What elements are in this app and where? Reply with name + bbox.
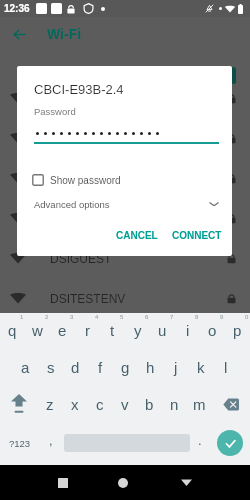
button[interactable]: GUEST-NET bbox=[0, 198, 250, 238]
staticText: e bbox=[58, 322, 67, 339]
button[interactable]: Shift bbox=[0, 389, 38, 419]
button[interactable]: ?123 bbox=[0, 428, 40, 458]
button[interactable]: Show password bbox=[32, 170, 121, 190]
button[interactable]: Recents bbox=[50, 465, 76, 500]
button[interactable]: l bbox=[213, 352, 238, 382]
button[interactable]: n bbox=[162, 389, 187, 419]
button[interactable]: 5 bbox=[100, 313, 125, 343]
staticText: w bbox=[32, 322, 43, 339]
staticText: t bbox=[110, 322, 115, 339]
staticText: DSITESTENV bbox=[50, 292, 126, 305]
button[interactable]: HOME-WIFI bbox=[0, 118, 250, 158]
staticText: b bbox=[145, 396, 154, 413]
staticText: f bbox=[98, 359, 103, 376]
staticText: 4 bbox=[95, 314, 99, 321]
staticText: Password bbox=[34, 106, 76, 117]
button[interactable]: g bbox=[113, 352, 138, 382]
staticText: 5 bbox=[120, 314, 124, 321]
staticText: Wi-Fi bbox=[47, 26, 82, 42]
button[interactable]: 2 bbox=[25, 313, 50, 343]
staticText: HOME-WIFI bbox=[50, 132, 116, 145]
button[interactable]: Home bbox=[110, 465, 136, 500]
staticText: k bbox=[197, 359, 205, 376]
button[interactable]: a bbox=[13, 352, 38, 382]
staticText: r bbox=[85, 322, 90, 339]
button[interactable]: . bbox=[189, 428, 211, 458]
button[interactable]: b bbox=[137, 389, 162, 419]
button[interactable]: 1 bbox=[0, 313, 25, 343]
staticText: v bbox=[121, 396, 129, 413]
button[interactable]: k bbox=[188, 352, 213, 382]
staticText: ?123 bbox=[9, 438, 31, 449]
button[interactable]: f bbox=[88, 352, 113, 382]
staticText: y bbox=[134, 322, 142, 339]
staticText: i bbox=[186, 322, 190, 339]
staticText: 9 bbox=[220, 314, 224, 321]
button[interactable]: 9 bbox=[200, 313, 225, 343]
staticText: x bbox=[71, 396, 79, 413]
button[interactable]: , bbox=[38, 428, 63, 458]
staticText: j bbox=[174, 359, 178, 376]
button[interactable]: Backspace bbox=[212, 389, 250, 419]
button[interactable]: h bbox=[138, 352, 163, 382]
staticText: n bbox=[170, 396, 179, 413]
staticText: u bbox=[158, 322, 167, 339]
staticText: a bbox=[21, 359, 30, 376]
staticText: 6 bbox=[145, 314, 149, 321]
staticText: h bbox=[146, 359, 155, 376]
staticText: z bbox=[46, 396, 54, 413]
staticText: NETGEAR-5G bbox=[50, 92, 129, 105]
staticText: . bbox=[198, 433, 202, 448]
button[interactable]: v bbox=[112, 389, 137, 419]
staticText: 7 bbox=[170, 314, 174, 321]
button[interactable]: j bbox=[163, 352, 188, 382]
button[interactable]: 7 bbox=[150, 313, 175, 343]
staticText: q bbox=[8, 322, 17, 339]
staticText: c bbox=[96, 396, 104, 413]
staticText: o bbox=[208, 322, 217, 339]
button[interactable]: NETGEAR-5G bbox=[0, 78, 250, 118]
button[interactable]: CANCEL bbox=[111, 225, 163, 246]
staticText: d bbox=[71, 359, 80, 376]
button[interactable]: Back bbox=[173, 465, 199, 500]
button[interactable]: DSIGUEST bbox=[0, 238, 250, 278]
staticText: g bbox=[121, 359, 130, 376]
button[interactable]: x bbox=[62, 389, 87, 419]
button[interactable]: DSITESTENV bbox=[0, 278, 250, 318]
staticText: 1 bbox=[20, 314, 24, 321]
staticText: Show password bbox=[50, 175, 121, 186]
button[interactable]: 4 bbox=[75, 313, 100, 343]
button[interactable]: 3 bbox=[50, 313, 75, 343]
staticText: CONNECT bbox=[172, 230, 222, 241]
staticText: m bbox=[193, 396, 206, 413]
button[interactable]: m bbox=[187, 389, 212, 419]
staticText: 8 bbox=[195, 314, 199, 321]
staticText: 0 bbox=[245, 314, 249, 321]
staticText: 2 bbox=[45, 314, 49, 321]
staticText: s bbox=[47, 359, 55, 376]
staticText: DSIGUEST bbox=[50, 252, 112, 265]
staticText: p bbox=[233, 322, 242, 339]
staticText: CANCEL bbox=[116, 230, 158, 241]
staticText: l bbox=[224, 359, 228, 376]
button[interactable]: c bbox=[87, 389, 112, 419]
button[interactable]: z bbox=[38, 389, 62, 419]
staticText: LINKSYS bbox=[50, 172, 101, 185]
button[interactable]: Back bbox=[6, 21, 32, 47]
staticText: , bbox=[49, 433, 53, 448]
button[interactable]: CONNECT bbox=[167, 225, 227, 246]
button[interactable]: Advanced options bbox=[17, 193, 232, 215]
button[interactable]: s bbox=[38, 352, 63, 382]
staticText: 12:36 bbox=[4, 3, 30, 14]
button[interactable]: d bbox=[63, 352, 88, 382]
staticText: CBCI-E93B-2.4 bbox=[34, 82, 124, 97]
button[interactable]: Enter bbox=[217, 430, 243, 456]
staticText: 3 bbox=[70, 314, 74, 321]
button[interactable]: 6 bbox=[125, 313, 150, 343]
staticText: Advanced options bbox=[34, 199, 110, 210]
button[interactable]: 0 bbox=[225, 313, 250, 343]
button[interactable]: 8 bbox=[175, 313, 200, 343]
button[interactable]: LINKSYS bbox=[0, 158, 250, 198]
